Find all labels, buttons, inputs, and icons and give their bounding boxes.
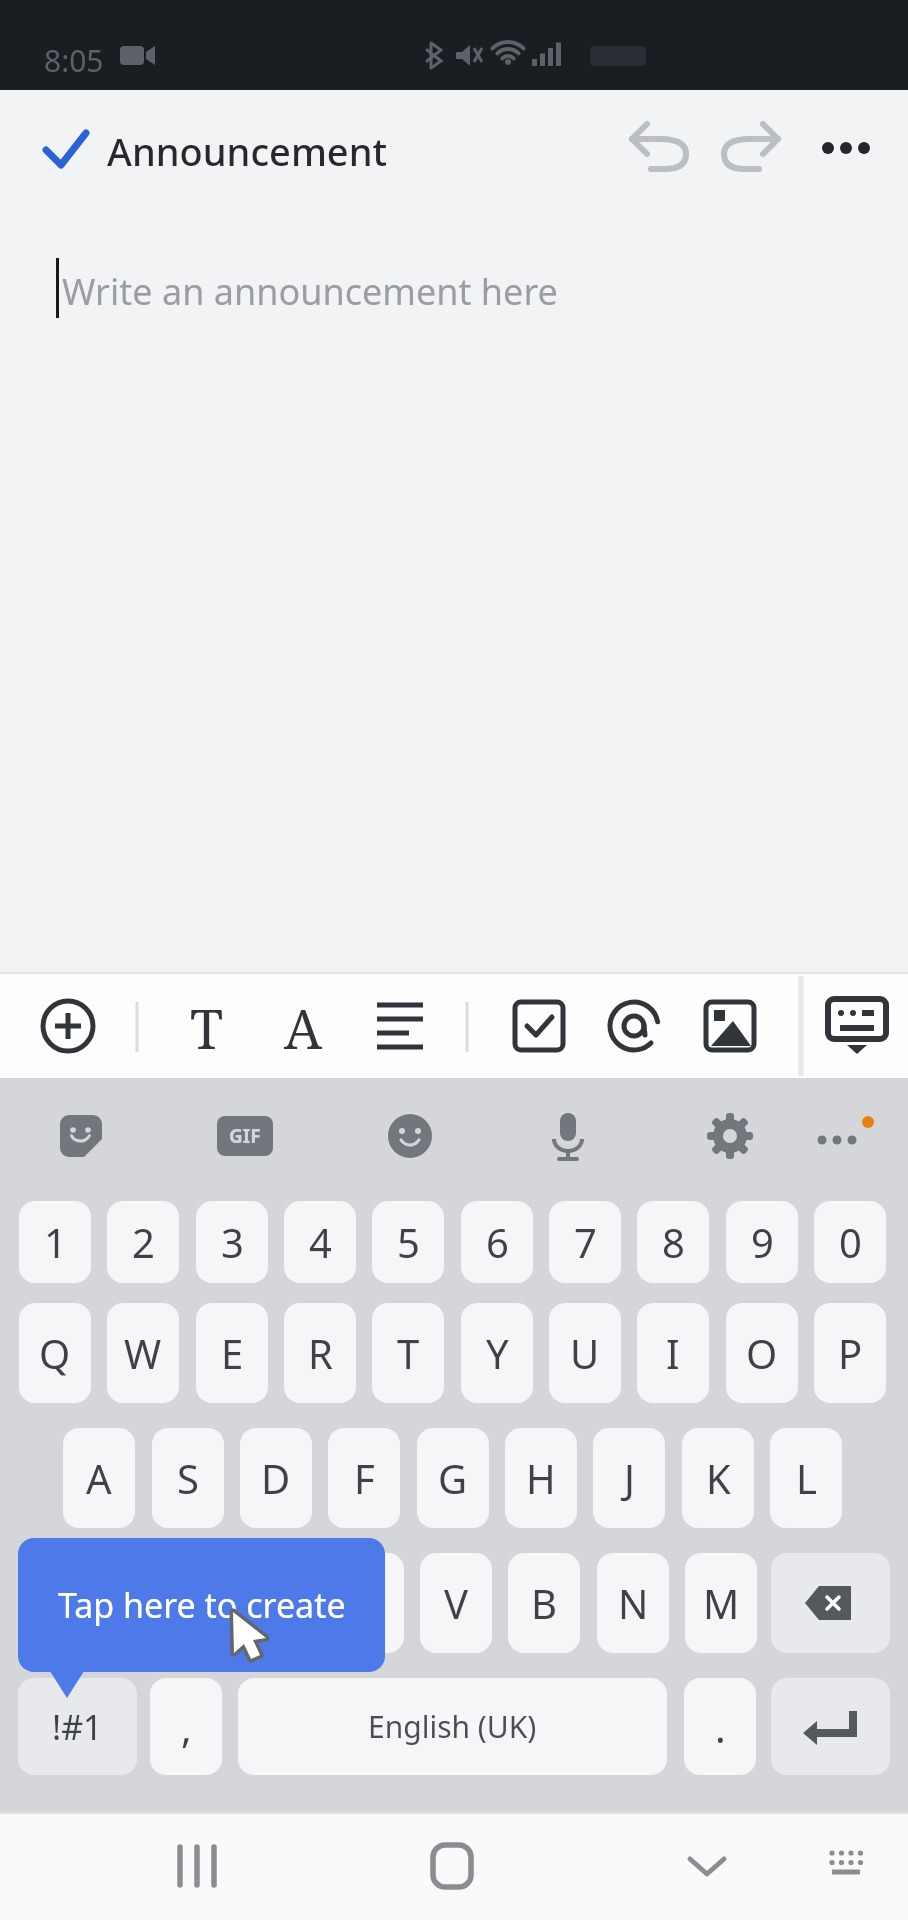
- button[interactable]: [375, 1101, 445, 1171]
- staticText: W: [124, 1326, 162, 1380]
- staticText: G: [438, 1451, 468, 1505]
- button[interactable]: Y: [461, 1303, 533, 1403]
- button[interactable]: U: [549, 1303, 621, 1403]
- button[interactable]: A: [63, 1428, 135, 1528]
- staticText: H: [526, 1451, 556, 1505]
- staticText: 0: [839, 1215, 862, 1269]
- button[interactable]: Tap here to create: [18, 1538, 385, 1672]
- button[interactable]: Q: [19, 1303, 91, 1403]
- button[interactable]: E: [196, 1303, 268, 1403]
- button[interactable]: A: [268, 991, 338, 1061]
- button[interactable]: 8: [637, 1201, 709, 1283]
- button[interactable]: [810, 1101, 890, 1171]
- button[interactable]: [816, 985, 898, 1067]
- button[interactable]: 9: [726, 1201, 798, 1283]
- button[interactable]: [402, 1826, 502, 1906]
- button[interactable]: [147, 1826, 247, 1906]
- staticText: 5: [397, 1215, 420, 1269]
- button[interactable]: [715, 115, 785, 185]
- button[interactable]: 3: [196, 1201, 268, 1283]
- staticText: 1: [44, 1215, 67, 1269]
- staticText: 9: [751, 1215, 774, 1269]
- button[interactable]: 1: [19, 1201, 91, 1283]
- button[interactable]: [533, 1101, 603, 1171]
- button[interactable]: M: [685, 1553, 757, 1653]
- button[interactable]: [504, 991, 574, 1061]
- button[interactable]: R: [284, 1303, 356, 1403]
- button[interactable]: V: [420, 1553, 492, 1653]
- button[interactable]: [30, 120, 100, 180]
- button[interactable]: N: [597, 1553, 669, 1653]
- button[interactable]: P: [814, 1303, 886, 1403]
- button[interactable]: B: [508, 1553, 580, 1653]
- button[interactable]: 6: [461, 1201, 533, 1283]
- button[interactable]: [695, 1101, 765, 1171]
- button[interactable]: T: [372, 1303, 444, 1403]
- button[interactable]: K: [682, 1428, 754, 1528]
- button[interactable]: O: [726, 1303, 798, 1403]
- staticText: Tap here to create: [58, 1582, 346, 1628]
- button[interactable]: [18, 1553, 137, 1653]
- staticText: T: [190, 991, 224, 1061]
- button[interactable]: 2: [107, 1201, 179, 1283]
- button[interactable]: I: [637, 1303, 709, 1403]
- button[interactable]: [33, 991, 103, 1061]
- staticText: 4: [309, 1215, 332, 1269]
- staticText: Announcement: [107, 125, 388, 177]
- staticText: A: [86, 1451, 112, 1505]
- button[interactable]: [695, 991, 765, 1061]
- button[interactable]: !#1: [18, 1678, 137, 1775]
- button[interactable]: [810, 118, 882, 180]
- button[interactable]: [599, 991, 669, 1061]
- button[interactable]: S: [152, 1428, 224, 1528]
- staticText: !#1: [52, 1704, 103, 1750]
- button[interactable]: [46, 1101, 116, 1171]
- button[interactable]: 5: [372, 1201, 444, 1283]
- button[interactable]: 0: [814, 1201, 886, 1283]
- staticText: K: [706, 1451, 731, 1505]
- staticText: English (UK): [368, 1706, 537, 1747]
- button[interactable]: W: [107, 1303, 179, 1403]
- button[interactable]: G: [417, 1428, 489, 1528]
- staticText: A: [284, 991, 323, 1061]
- button[interactable]: H: [505, 1428, 577, 1528]
- staticText: E: [221, 1326, 244, 1380]
- button[interactable]: L: [770, 1428, 842, 1528]
- button[interactable]: [771, 1678, 890, 1775]
- button[interactable]: English (UK): [238, 1678, 667, 1775]
- staticText: 8: [662, 1215, 685, 1269]
- button[interactable]: ,: [150, 1678, 222, 1775]
- button[interactable]: 7: [549, 1201, 621, 1283]
- button[interactable]: X: [243, 1553, 315, 1653]
- button[interactable]: 4: [284, 1201, 356, 1283]
- staticText: ,: [181, 1700, 192, 1754]
- staticText: B: [531, 1576, 557, 1630]
- staticText: I: [666, 1326, 680, 1380]
- button[interactable]: Z: [155, 1553, 227, 1653]
- button[interactable]: F: [328, 1428, 400, 1528]
- staticText: R: [308, 1326, 333, 1380]
- button[interactable]: [806, 1826, 886, 1906]
- staticText: .: [715, 1700, 726, 1754]
- button[interactable]: C: [332, 1553, 404, 1653]
- staticText: V: [444, 1576, 468, 1630]
- staticText: P: [838, 1326, 863, 1380]
- button[interactable]: [625, 115, 695, 185]
- staticText: 8:05: [44, 40, 104, 81]
- staticText: Y: [486, 1326, 509, 1380]
- button[interactable]: [771, 1553, 890, 1653]
- button[interactable]: [657, 1826, 757, 1906]
- staticText: 6: [486, 1215, 509, 1269]
- staticText: 3: [221, 1215, 244, 1269]
- staticText: U: [570, 1326, 600, 1380]
- button[interactable]: T: [172, 991, 242, 1061]
- button[interactable]: GIF: [210, 1101, 280, 1171]
- button[interactable]: D: [240, 1428, 312, 1528]
- staticText: Z: [180, 1576, 203, 1630]
- staticText: Q: [39, 1326, 71, 1380]
- button[interactable]: .: [684, 1678, 756, 1775]
- staticText: 7: [574, 1215, 597, 1269]
- button[interactable]: J: [593, 1428, 665, 1528]
- button[interactable]: [365, 991, 435, 1061]
